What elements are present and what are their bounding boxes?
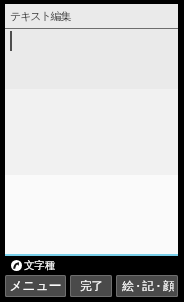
staticText: メニュー [9,278,62,294]
staticText: 絵・記・顔 [122,279,173,293]
button[interactable]: メニュー [6,276,65,296]
button[interactable]: 絵・記・顔 [117,276,177,296]
other: Up key [11,260,22,271]
button[interactable]: Up key [11,256,184,275]
button[interactable]: 完了 [71,276,111,296]
staticText: 文字種 [24,259,56,272]
staticText: 完了 [80,279,103,293]
staticText: テキスト編集 [10,9,71,23]
